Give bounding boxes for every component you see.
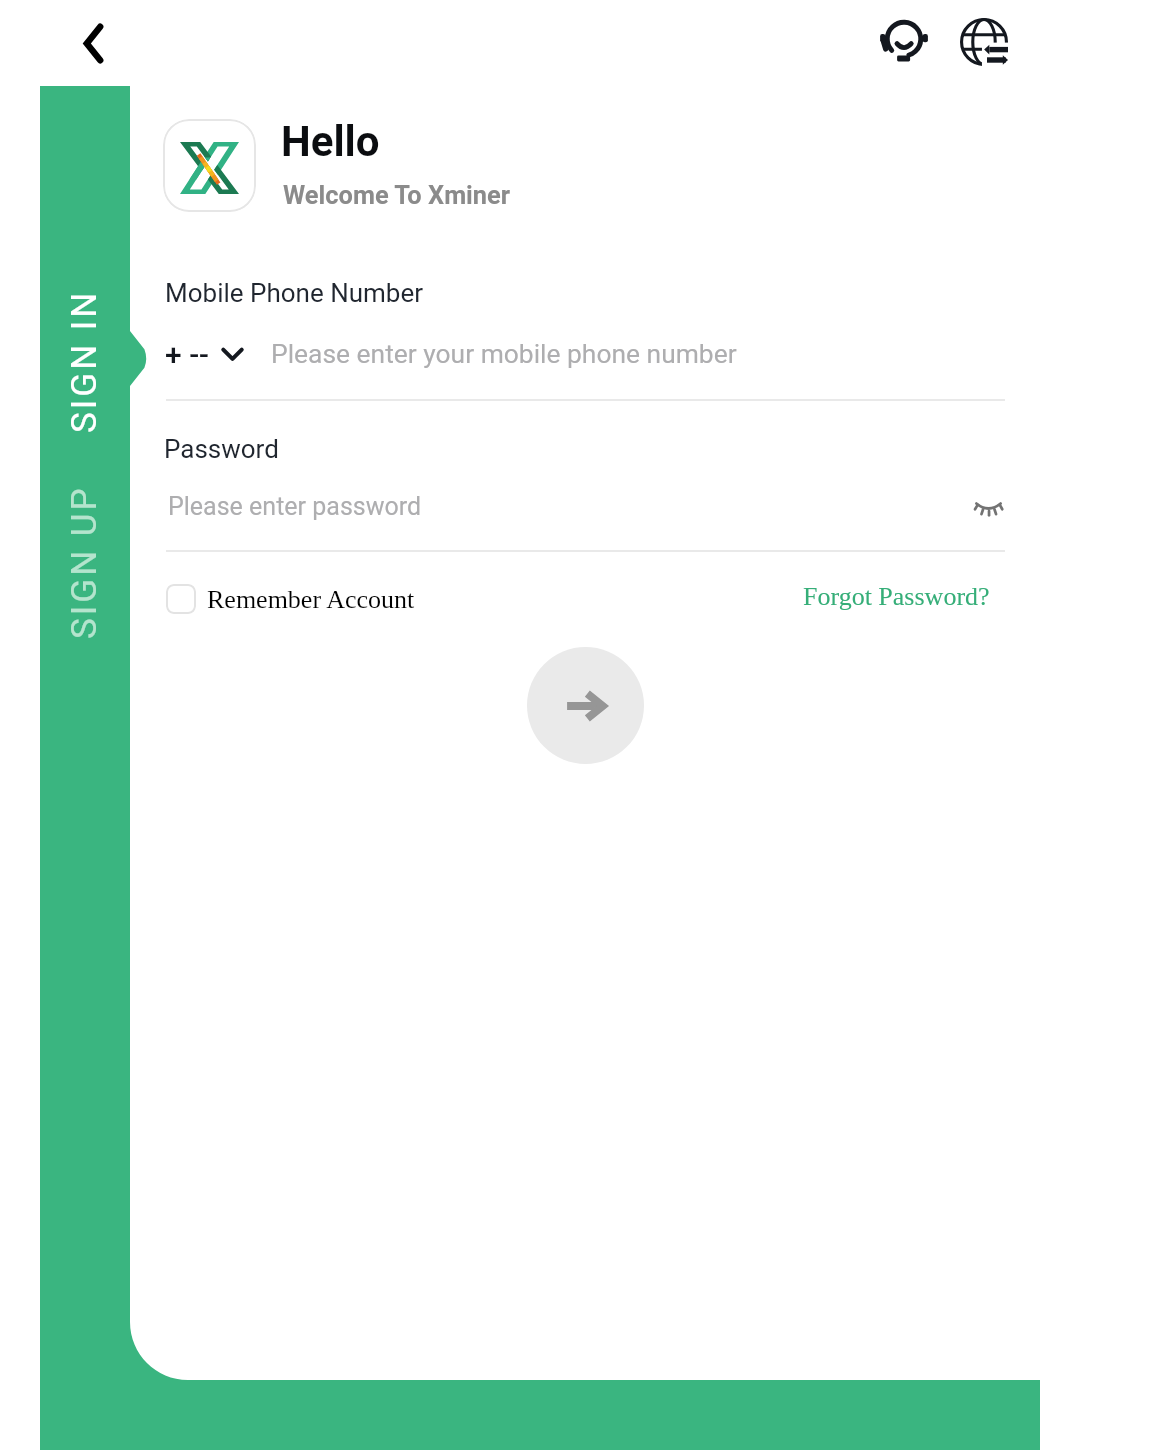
button[interactable]: Remember Account — [166, 581, 415, 617]
staticText: + -- — [165, 337, 209, 372]
button[interactable]: + -- — [165, 333, 243, 375]
button[interactable]: Back — [57, 7, 129, 79]
staticText: Remember Account — [207, 585, 415, 614]
staticText: Hello — [281, 117, 380, 166]
button[interactable] — [40, 265, 130, 456]
staticText: Please enter password — [168, 492, 422, 521]
staticText: SIGN IN — [64, 289, 105, 433]
staticText: SIGN UP — [64, 485, 105, 639]
staticText: Welcome To Xminer — [283, 180, 511, 210]
button[interactable]: Language — [948, 6, 1020, 78]
button[interactable]: Show password — [959, 479, 1017, 537]
staticText: Password — [164, 434, 279, 464]
button[interactable] — [40, 460, 130, 663]
staticText: Forgot Password? — [803, 582, 990, 611]
button[interactable]: Sign in — [527, 647, 644, 764]
button[interactable]: Customer support — [868, 3, 940, 75]
button[interactable]: Forgot Password? — [803, 582, 990, 620]
staticText: Please enter your mobile phone number — [271, 339, 737, 370]
staticText: Mobile Phone Number — [165, 278, 424, 308]
